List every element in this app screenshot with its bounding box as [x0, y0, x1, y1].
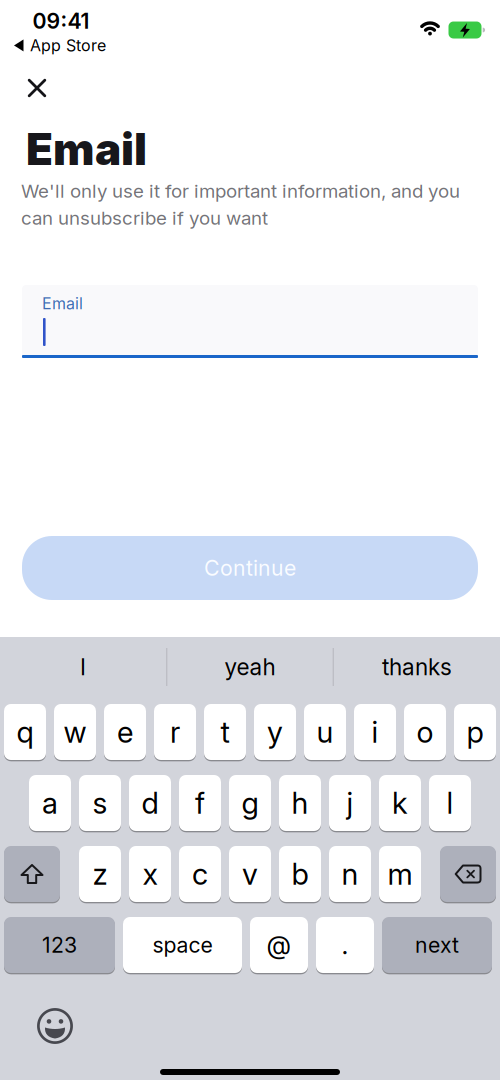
button[interactable]: x	[129, 845, 171, 903]
staticText: a	[42, 786, 58, 820]
staticText: z	[92, 857, 107, 891]
button[interactable]: c	[179, 845, 221, 903]
staticText: s	[92, 786, 107, 820]
staticText: w	[63, 715, 86, 749]
button[interactable]: 123	[4, 916, 115, 974]
button[interactable]: n	[329, 845, 371, 903]
button[interactable]: t	[204, 703, 246, 761]
staticText: e	[117, 715, 133, 749]
staticText: b	[291, 857, 308, 891]
button[interactable]: .	[316, 916, 374, 974]
staticText: yeah	[224, 654, 275, 680]
button[interactable]: a	[29, 774, 71, 832]
staticText: p	[466, 715, 483, 749]
staticText: c	[192, 857, 208, 891]
button[interactable]: l	[429, 774, 471, 832]
staticText: o	[416, 715, 433, 749]
button[interactable]: w	[54, 703, 96, 761]
button[interactable]: Email	[22, 285, 478, 358]
staticText: r	[170, 715, 180, 749]
staticText: y	[267, 715, 283, 749]
button[interactable]: I	[3, 642, 163, 692]
staticText: I	[80, 654, 86, 680]
staticText: space	[152, 932, 212, 958]
staticText: k	[392, 786, 408, 820]
staticText: We'll only use it for important informat…	[21, 180, 460, 202]
button[interactable]: h	[279, 774, 321, 832]
button[interactable]: next	[382, 916, 492, 974]
staticText: i	[371, 715, 378, 749]
button[interactable]: f	[179, 774, 221, 832]
staticText: n	[341, 857, 358, 891]
staticText: thanks	[382, 654, 452, 680]
staticText: h	[291, 786, 308, 820]
button[interactable]: v	[229, 845, 271, 903]
button[interactable]: s	[79, 774, 121, 832]
staticText: t	[220, 715, 229, 749]
staticText: Email	[42, 294, 83, 313]
staticText: next	[415, 932, 459, 958]
button[interactable]: i	[354, 703, 396, 761]
button[interactable]: Continue	[22, 536, 478, 600]
button[interactable]: y	[254, 703, 296, 761]
staticText: q	[16, 715, 33, 749]
button[interactable]: k	[379, 774, 421, 832]
button[interactable]: g	[229, 774, 271, 832]
button[interactable]: m	[379, 845, 421, 903]
button[interactable]: Emoji	[37, 1008, 73, 1044]
staticText: @	[266, 930, 291, 960]
button[interactable]: yeah	[170, 642, 330, 692]
button[interactable]: e	[104, 703, 146, 761]
button[interactable]: @	[250, 916, 308, 974]
button[interactable]: Close	[20, 71, 54, 105]
staticText: App Store	[30, 36, 106, 55]
button[interactable]: p	[454, 703, 496, 761]
staticText: d	[141, 786, 158, 820]
button[interactable]: b	[279, 845, 321, 903]
staticText: Email	[26, 123, 147, 175]
button[interactable]: u	[304, 703, 346, 761]
staticText: j	[346, 786, 353, 820]
staticText: g	[241, 786, 258, 820]
staticText: can unsubscribe if you want	[21, 207, 268, 229]
staticText: m	[387, 857, 412, 891]
button[interactable]: App Store	[14, 36, 106, 55]
staticText: 09:41	[32, 8, 89, 34]
staticText: 123	[42, 932, 77, 958]
button[interactable]: z	[79, 845, 121, 903]
staticText: u	[316, 715, 333, 749]
button[interactable]: d	[129, 774, 171, 832]
staticText: l	[446, 786, 453, 820]
staticText: f	[195, 786, 205, 820]
staticText: v	[242, 857, 258, 891]
staticText: x	[142, 857, 157, 891]
staticText: .	[341, 930, 348, 960]
button[interactable]: Delete	[440, 845, 496, 903]
button[interactable]: space	[123, 916, 242, 974]
button[interactable]: Shift	[4, 845, 60, 903]
button[interactable]: thanks	[337, 642, 497, 692]
button[interactable]: q	[4, 703, 46, 761]
staticText: Continue	[204, 555, 296, 581]
button[interactable]: r	[154, 703, 196, 761]
button[interactable]: j	[329, 774, 371, 832]
button[interactable]: o	[404, 703, 446, 761]
